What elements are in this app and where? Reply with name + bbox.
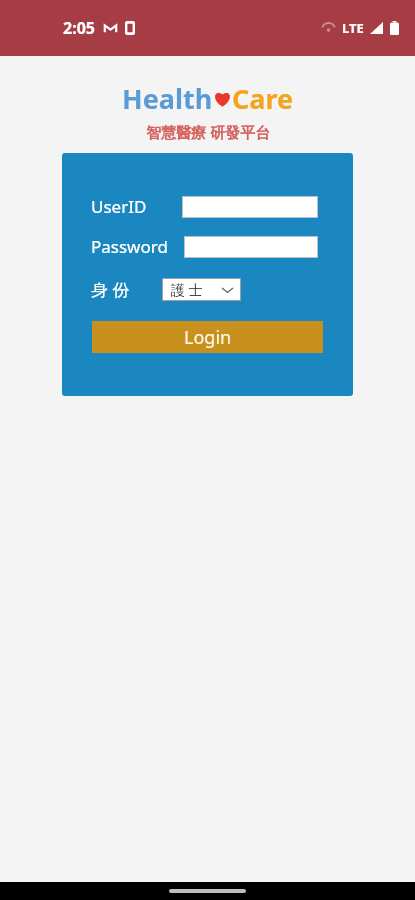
button[interactable]: Select role [163, 279, 240, 300]
staticText: Password [91, 235, 168, 258]
staticText: Health [122, 80, 213, 117]
button[interactable]: Login [92, 321, 323, 353]
staticText: 智慧醫療 研發平台 [146, 122, 270, 142]
staticText: 2:05 [63, 17, 95, 39]
staticText: LTE [342, 19, 364, 37]
staticText: UserID [91, 195, 147, 218]
staticText: Login [184, 325, 232, 350]
staticText: 身 份 [91, 278, 130, 301]
staticText: Care [232, 80, 294, 117]
staticText: 護 士 [171, 280, 203, 299]
